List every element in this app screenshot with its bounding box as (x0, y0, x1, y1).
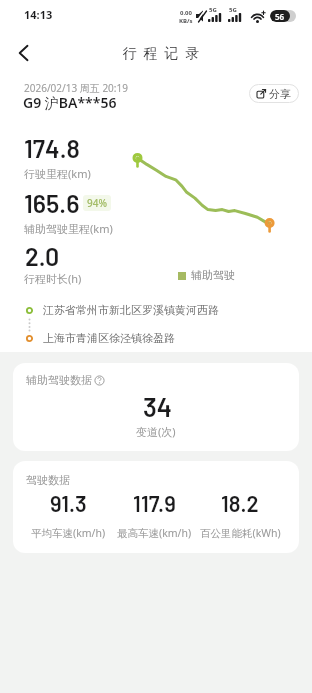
staticText: 最高车速(km/h) (117, 526, 192, 540)
button[interactable]: 辅助驾驶数据 (13, 363, 299, 451)
staticText: KB/s (179, 17, 193, 25)
staticText: 94% (87, 196, 107, 210)
staticText: 上海市青浦区徐泾镇徐盈路 (43, 331, 175, 345)
staticText: 平均车速(km/h) (31, 526, 106, 540)
staticText: 165.6 (24, 188, 80, 218)
staticText: 驾驶数据 (26, 473, 70, 487)
button[interactable]: 上海市青浦区徐泾镇徐盈路 (25, 331, 175, 345)
staticText: 变道(次) (136, 424, 176, 439)
staticText: 辅助驾驶数据 (26, 373, 92, 387)
staticText: 行程时长(h) (24, 271, 82, 286)
staticText: 辅助驾驶里程(km) (24, 221, 113, 236)
staticText: 34 (143, 391, 173, 422)
staticText: 117.9 (133, 490, 176, 516)
staticText: 2026/02/13 周五 20:19 (24, 81, 128, 95)
staticText: G9 沪BA***56 (23, 93, 117, 112)
button[interactable]: 分享 (249, 84, 299, 103)
staticText: 百公里能耗(kWh) (200, 526, 281, 540)
staticText: 174.8 (24, 133, 80, 163)
staticText: 91.3 (50, 490, 87, 516)
staticText: 56 (275, 11, 285, 22)
staticText: 江苏省常州市新北区罗溪镇黄河西路 (43, 303, 219, 317)
staticText: 5G (209, 6, 217, 14)
button[interactable] (13, 42, 37, 64)
staticText: 2.0 (25, 241, 60, 271)
staticText: 分享 (269, 87, 291, 101)
staticText: 5G (229, 6, 237, 14)
button[interactable]: 驾驶数据 (13, 461, 299, 553)
staticText: 14:13 (24, 7, 53, 22)
staticText: 行程记录 (119, 45, 203, 63)
staticText: 辅助驾驶 (191, 268, 235, 282)
staticText: 0.00 (180, 9, 192, 17)
staticText: 18.2 (221, 490, 259, 516)
button[interactable]: 江苏省常州市新北区罗溪镇黄河西路 (25, 303, 219, 317)
staticText: 行驶里程(km) (24, 166, 91, 181)
